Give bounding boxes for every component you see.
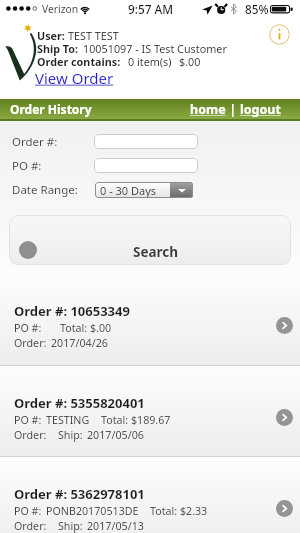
staticText: PO #: <box>14 413 42 428</box>
staticText: 2017/05/13 <box>87 519 144 533</box>
staticText: logout <box>240 101 281 118</box>
button[interactable]: Order #: 10653349 <box>0 274 300 365</box>
staticText: 9:57 AM <box>128 1 174 17</box>
staticText: Order History <box>10 101 92 117</box>
staticText: 2017/05/06 <box>87 428 144 443</box>
staticText: 0 item(s) <box>128 54 172 69</box>
staticText: 10051097 - IS Test Customer <box>83 41 227 56</box>
staticText: Total: $.00 <box>60 321 112 336</box>
other: Open order 5355820401 <box>276 409 293 426</box>
staticText: Ship: <box>58 428 83 443</box>
staticText: TEST TEST <box>68 28 119 43</box>
staticText: User: <box>37 28 65 43</box>
button[interactable]: Order #: 5355820401 <box>0 366 300 456</box>
staticText: Ship: <box>58 519 83 533</box>
staticText: Search <box>133 243 179 261</box>
staticText: 85% <box>245 1 269 17</box>
button[interactable]: logout <box>240 101 281 118</box>
other: Open order 10653349 <box>276 317 293 334</box>
staticText: Verizon <box>42 2 79 16</box>
staticText: Date Range: <box>12 182 78 198</box>
button[interactable] <box>94 134 198 149</box>
staticText: PONB20170513DE <box>46 504 139 519</box>
button[interactable]: Order #: 5362978101 <box>0 457 300 533</box>
other: Open order 5362978101 <box>276 500 293 517</box>
staticText: Order #: 5362978101 <box>14 485 145 503</box>
staticText: 2017/04/26 <box>51 336 108 351</box>
staticText: Ship To: <box>37 41 79 56</box>
staticText: 0 - 30 Days <box>100 183 157 198</box>
staticText: Order: <box>14 519 47 533</box>
button[interactable]: Search <box>9 215 291 265</box>
staticText: TESTING <box>46 413 90 428</box>
staticText: Order: <box>14 336 47 351</box>
staticText: Order: <box>14 428 47 443</box>
button[interactable] <box>94 158 198 173</box>
staticText: $.00 <box>179 54 201 69</box>
staticText: Total: $189.67 <box>101 413 171 428</box>
staticText: PO #: <box>14 321 42 336</box>
staticText: Order #: 5355820401 <box>14 394 145 412</box>
staticText: View Order <box>35 68 114 88</box>
button[interactable]: Account information <box>269 24 290 45</box>
button[interactable]: View Order <box>35 68 114 88</box>
button[interactable]: 0 - 30 Days <box>95 182 193 198</box>
staticText: PO #: <box>12 158 42 174</box>
staticText: Order contains: <box>37 54 121 69</box>
button[interactable]: home <box>190 101 226 118</box>
staticText: | <box>226 101 240 118</box>
staticText: Order #: 10653349 <box>14 302 130 320</box>
staticText: home <box>190 101 226 118</box>
staticText: PO #: <box>14 504 42 519</box>
staticText: Order #: <box>12 134 58 150</box>
staticText: Total: $2.33 <box>150 504 208 519</box>
